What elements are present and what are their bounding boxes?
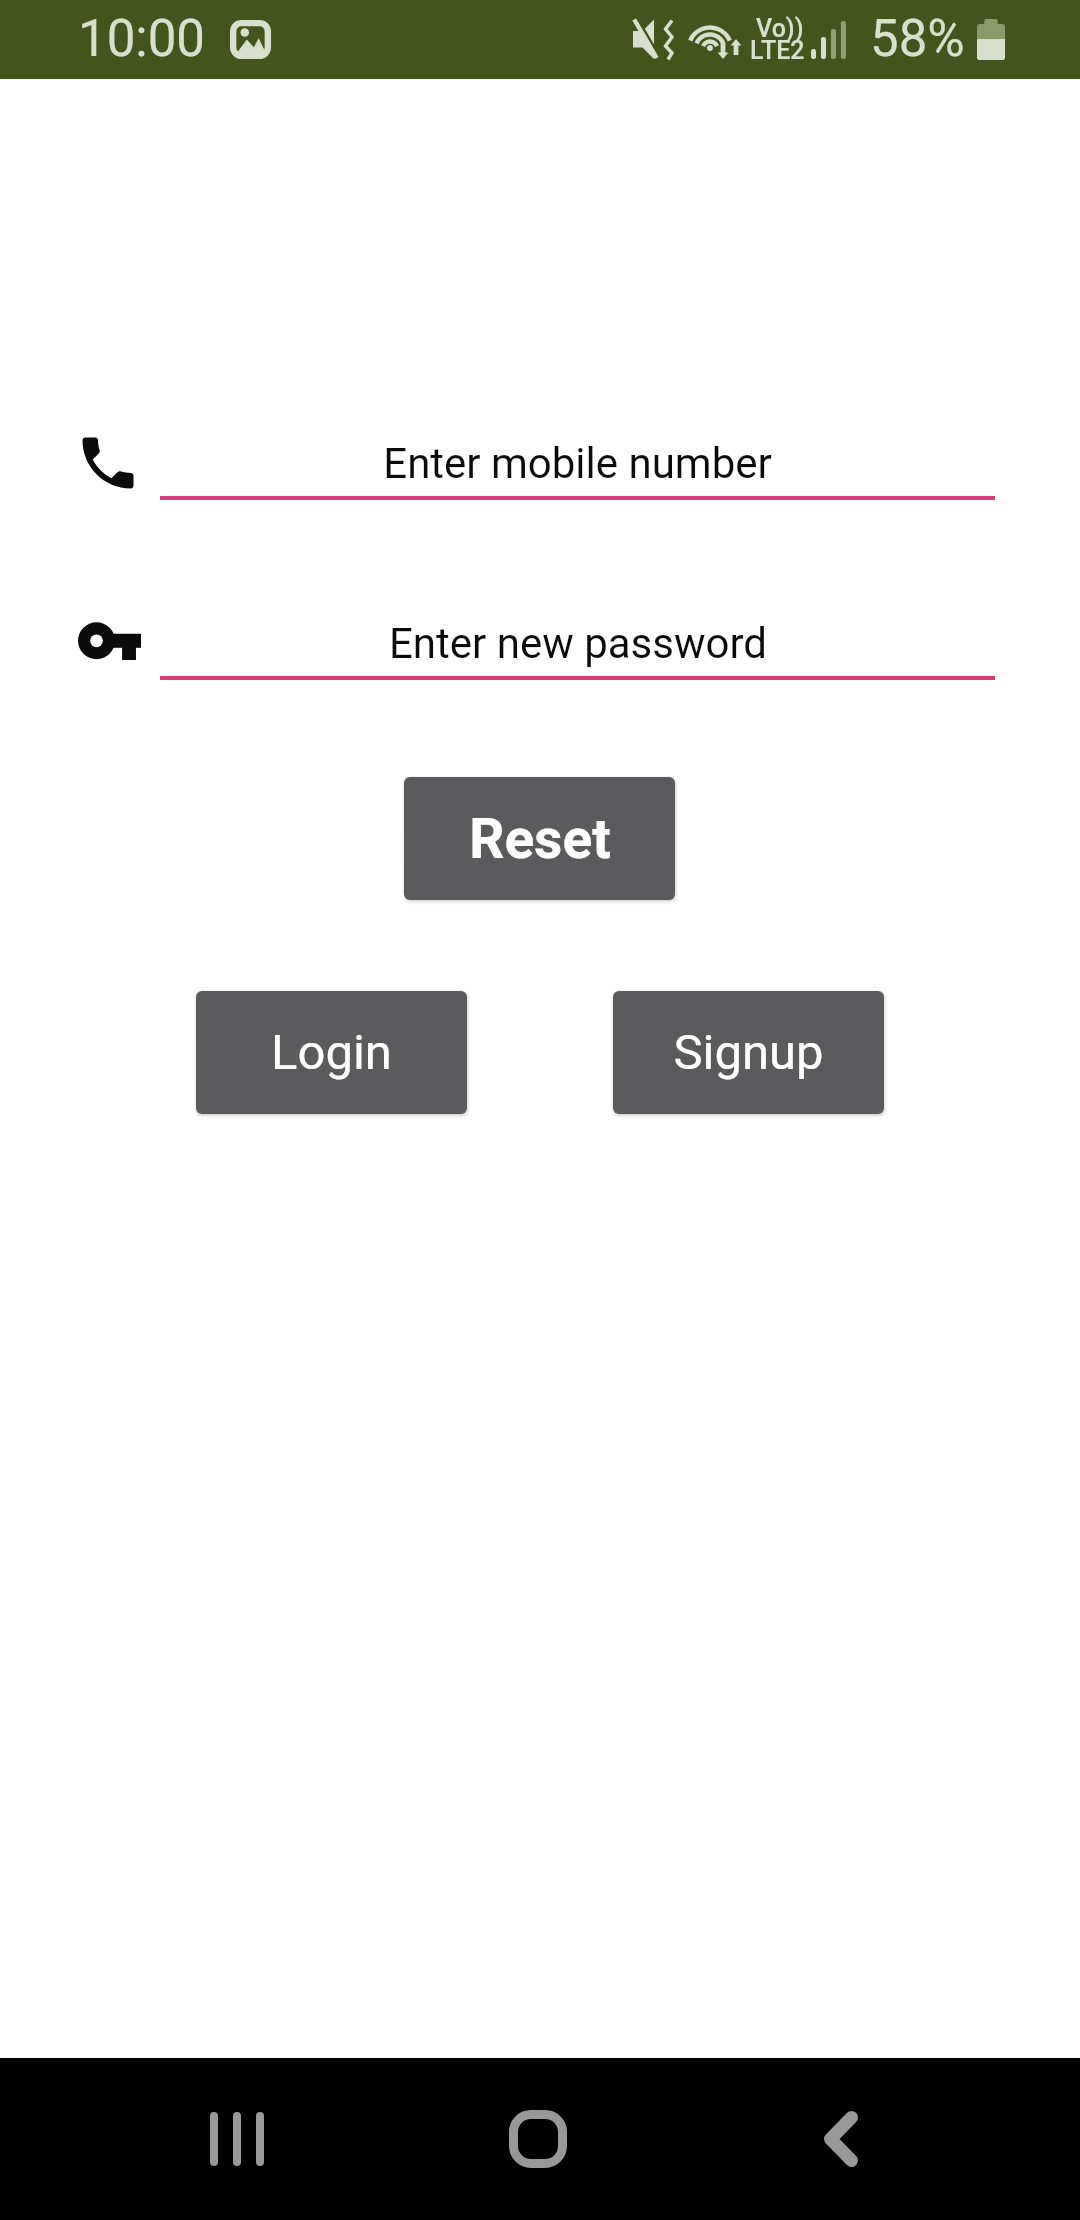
staticText: LTE2: [750, 36, 805, 65]
staticText: Login: [271, 1024, 392, 1081]
button[interactable]: Home: [431, 2058, 645, 2220]
button[interactable]: Reset: [404, 777, 675, 900]
button[interactable]: Enter mobile number: [160, 435, 995, 501]
button[interactable]: Login: [196, 991, 467, 1114]
staticText: Enter new password: [389, 619, 767, 668]
staticText: Reset: [469, 807, 611, 871]
button[interactable]: Signup: [613, 991, 884, 1114]
staticText: 58%: [870, 9, 965, 69]
button[interactable]: Back: [734, 2058, 948, 2220]
button[interactable]: Recent apps: [130, 2058, 344, 2220]
staticText: 10:00: [78, 9, 206, 69]
button[interactable]: Enter new password: [160, 615, 995, 681]
staticText: Enter mobile number: [383, 439, 772, 488]
staticText: Signup: [673, 1024, 824, 1081]
staticText: Vo)): [756, 14, 804, 43]
